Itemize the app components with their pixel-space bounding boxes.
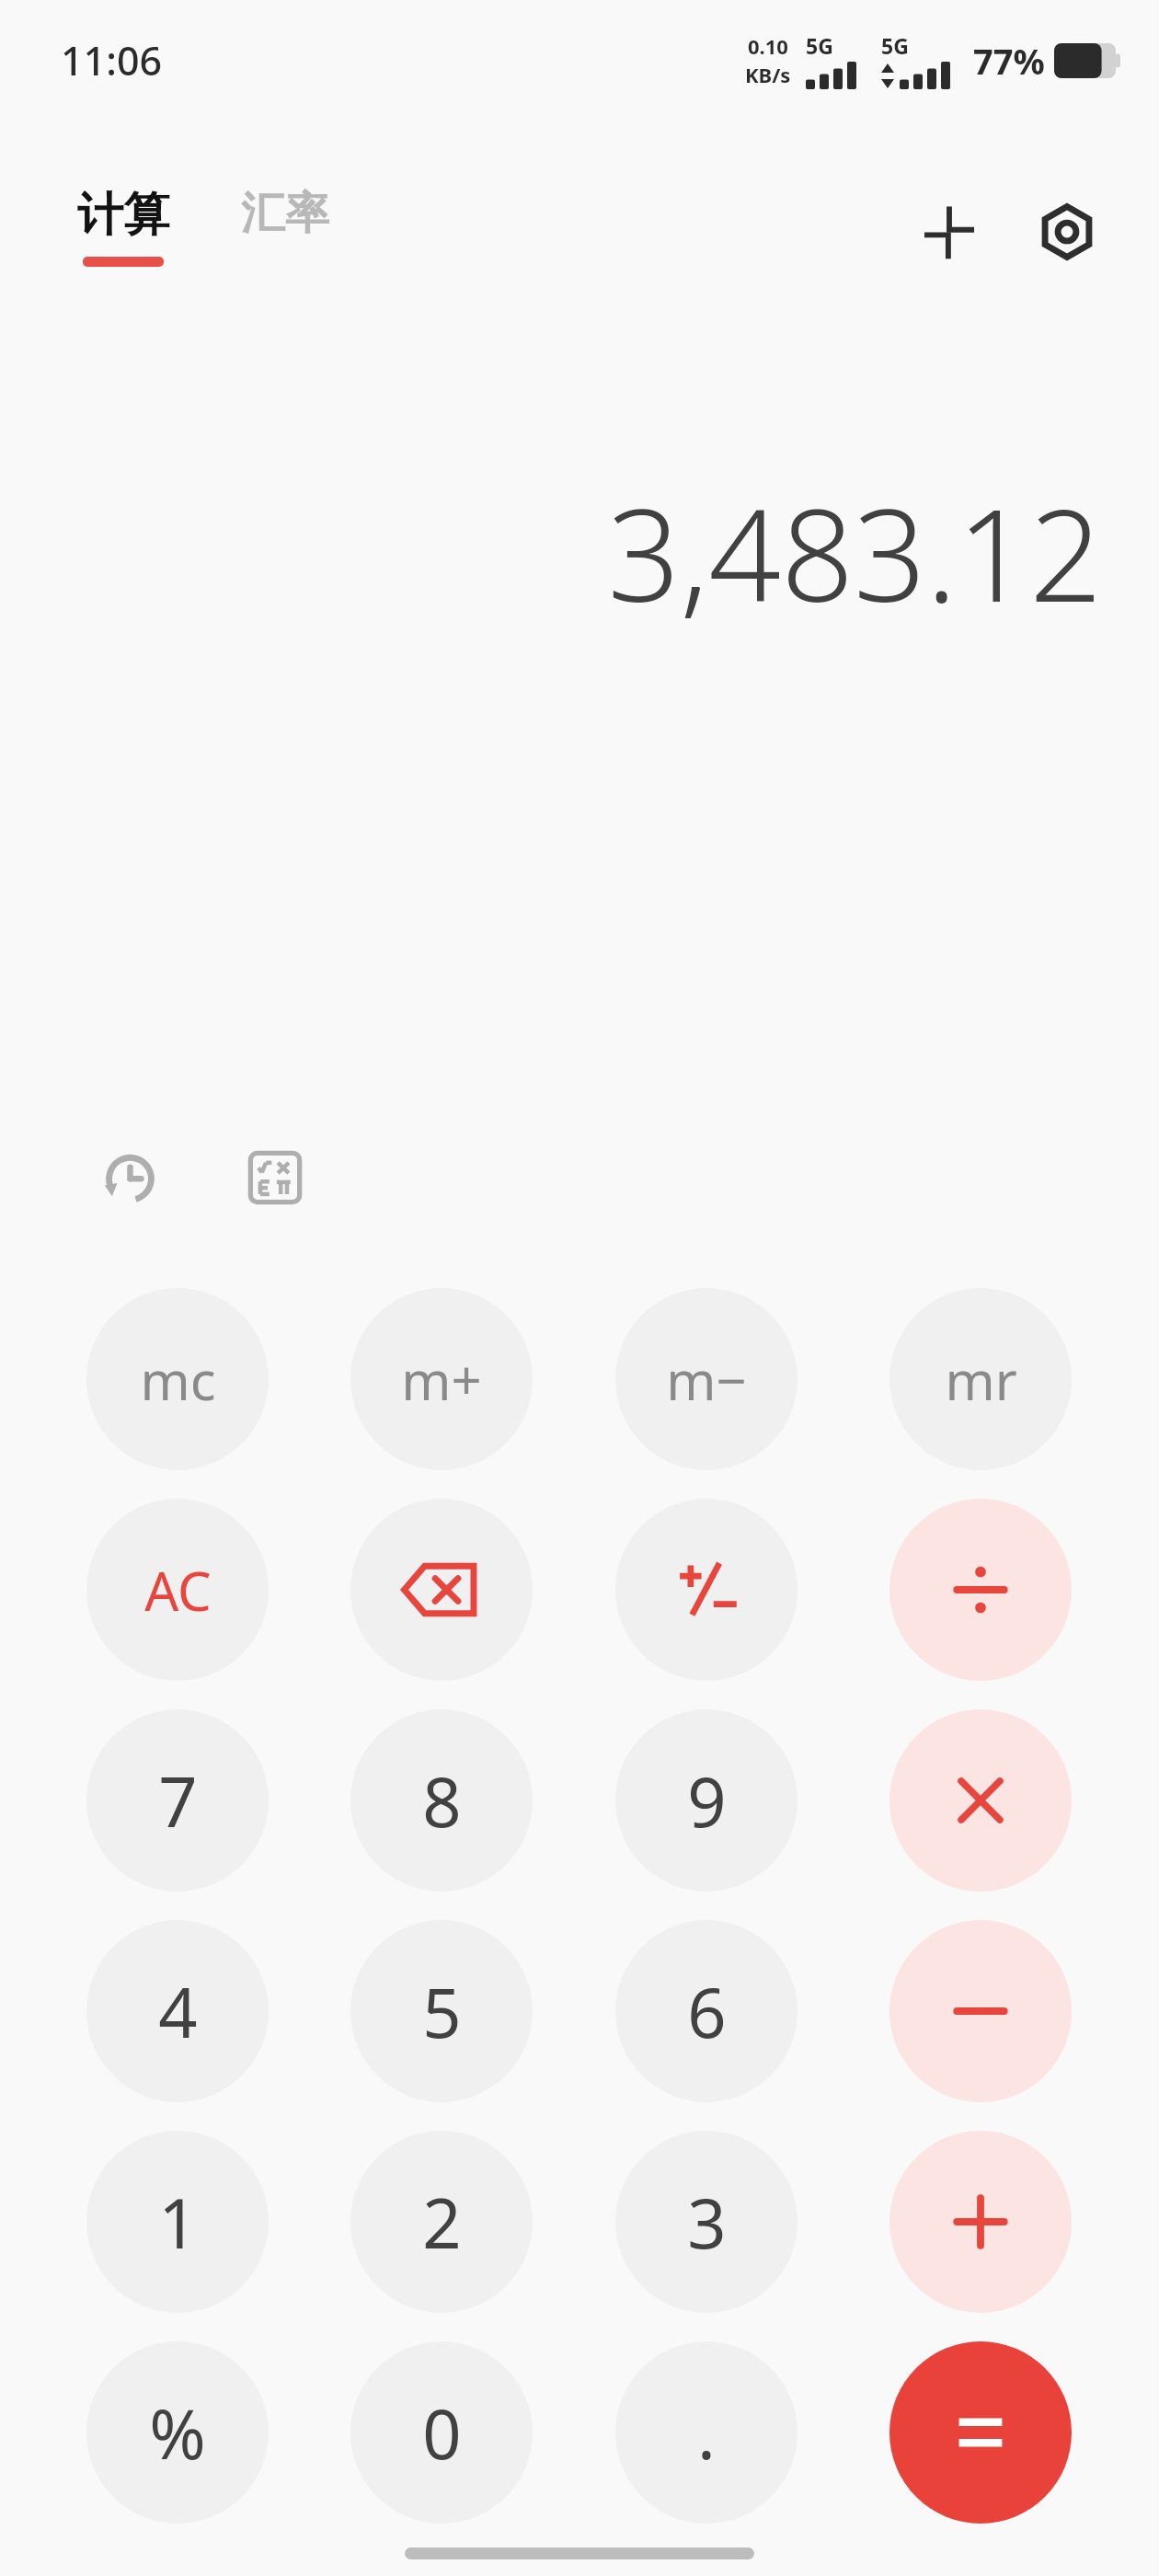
staticText: 4 (158, 1965, 198, 2058)
staticText: 3 (687, 2176, 727, 2269)
staticText: 3,483.12 (607, 466, 1102, 638)
button[interactable]: m− (615, 1288, 798, 1470)
button[interactable]: 2 (350, 2131, 533, 2313)
button[interactable]: AC (86, 1499, 269, 1681)
button[interactable]: mr (889, 1288, 1072, 1470)
staticText: 0.10 (748, 32, 788, 60)
staticText: mc (140, 1343, 216, 1416)
staticText: 汇率 (241, 186, 329, 241)
button[interactable]: 1 (86, 2131, 269, 2313)
staticText: 2 (422, 2176, 462, 2269)
button[interactable]: Plus minus (615, 1499, 798, 1681)
button[interactable]: Minus (889, 1920, 1072, 2102)
staticText: mr (945, 1343, 1017, 1416)
staticText: 6 (687, 1965, 727, 2058)
button[interactable]: % (86, 2341, 269, 2524)
button[interactable]: Equals (889, 2341, 1072, 2524)
staticText: AC (144, 1554, 212, 1627)
button[interactable]: 计算 (72, 184, 175, 269)
button[interactable]: Divide (889, 1499, 1072, 1681)
button[interactable]: Plus (889, 2131, 1072, 2313)
button[interactable]: Collapse (905, 188, 993, 276)
button[interactable]: m+ (350, 1288, 533, 1470)
button[interactable]: Backspace (350, 1499, 533, 1681)
staticText: . (697, 2386, 716, 2479)
staticText: 77% (973, 37, 1045, 85)
button[interactable]: mc (86, 1288, 269, 1470)
staticText: m+ (401, 1343, 482, 1416)
staticText: 8 (422, 1754, 462, 1847)
staticText: 5G (806, 31, 833, 60)
button[interactable]: 汇率 (235, 184, 335, 243)
staticText: m− (666, 1343, 747, 1416)
staticText: 9 (687, 1754, 727, 1847)
staticText: KB/s (745, 61, 791, 88)
button[interactable]: Multiply (889, 1709, 1072, 1892)
button[interactable]: 0 (350, 2341, 533, 2524)
button[interactable]: History (77, 1127, 178, 1228)
staticText: 11:06 (61, 33, 163, 87)
button[interactable]: 5 (350, 1920, 533, 2102)
button[interactable]: . (615, 2341, 798, 2524)
button[interactable]: 6 (615, 1920, 798, 2102)
staticText: 计算 (77, 186, 169, 244)
button[interactable]: Settings (1023, 188, 1111, 276)
button[interactable]: 3 (615, 2131, 798, 2313)
staticText: 7 (158, 1754, 198, 1847)
staticText: 5 (422, 1965, 462, 2058)
button[interactable]: 7 (86, 1709, 269, 1892)
button[interactable]: 9 (615, 1709, 798, 1892)
button[interactable]: Scientific functions (224, 1127, 326, 1228)
staticText: 0 (422, 2386, 462, 2479)
staticText: 1 (158, 2176, 198, 2269)
button[interactable]: 4 (86, 1920, 269, 2102)
staticText: % (149, 2386, 206, 2479)
button[interactable]: 8 (350, 1709, 533, 1892)
staticText: 5G (881, 31, 909, 60)
